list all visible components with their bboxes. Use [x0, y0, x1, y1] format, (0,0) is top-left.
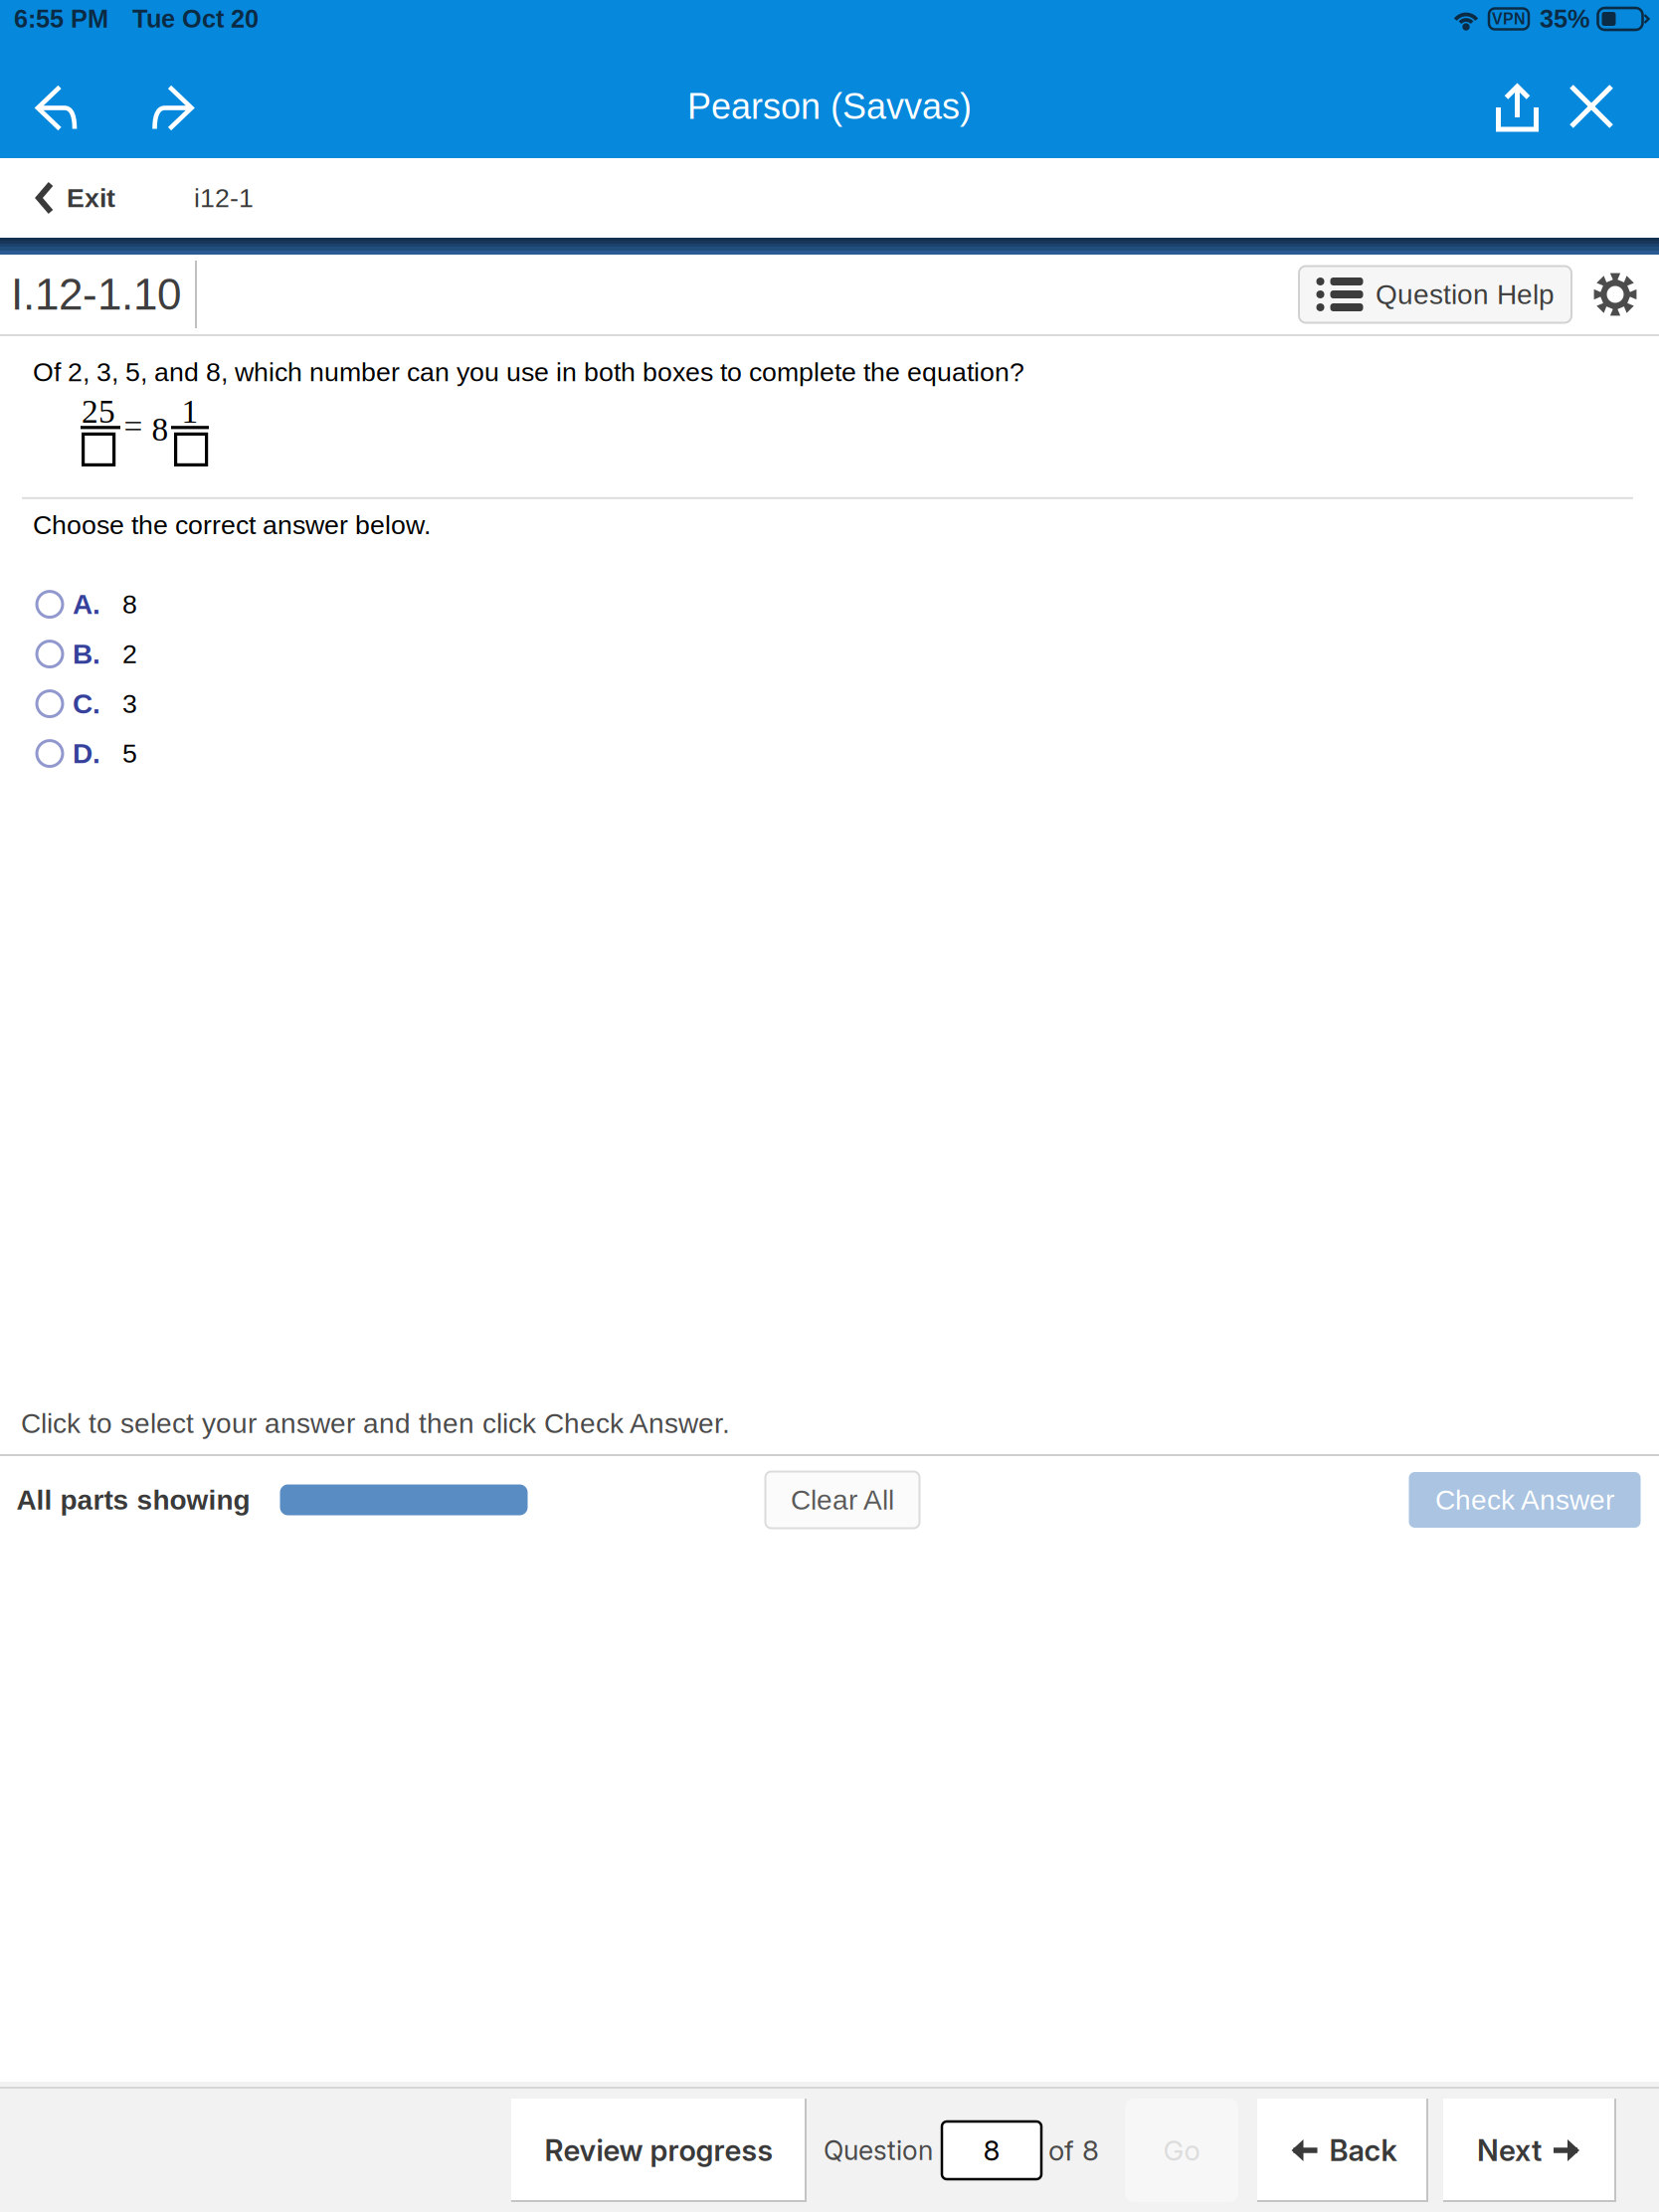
staticText: VPN [1492, 10, 1526, 28]
staticText: Pearson (Savvas) [687, 86, 972, 126]
staticText: 1 [182, 393, 198, 430]
button[interactable]: Clear All [765, 1472, 920, 1528]
staticText: Of 2, 3, 5, and 8, which number can you … [33, 357, 1024, 387]
staticText: 8 [983, 2134, 1000, 2167]
staticText: 3 [122, 689, 137, 719]
staticText: 6:55 PM [14, 5, 108, 33]
staticText: Click to select your answer and then cli… [21, 1408, 730, 1439]
button[interactable]: Review progress [511, 2099, 807, 2202]
staticText: C. [73, 688, 100, 719]
staticText: A. [73, 589, 100, 620]
button[interactable]: Back [0, 55, 112, 158]
button[interactable]: A. [0, 579, 1659, 629]
staticText: Next [1477, 2133, 1542, 2168]
button[interactable]: Close [1548, 55, 1659, 158]
staticText: B. [73, 638, 100, 670]
staticText: Back [1329, 2133, 1397, 2168]
button[interactable]: B. [0, 629, 1659, 679]
staticText: 25 [82, 393, 115, 430]
button[interactable]: D. [0, 729, 1659, 778]
button[interactable]: Check Answer [1409, 1472, 1641, 1528]
button[interactable]: Exit [0, 158, 135, 238]
staticText: Check Answer [1435, 1484, 1614, 1515]
staticText: of 8 [1048, 2134, 1099, 2167]
button[interactable]: Back [1257, 2099, 1428, 2202]
staticText: 5 [122, 739, 137, 768]
staticText: D. [73, 738, 100, 769]
staticText: I.12-1.10 [11, 270, 181, 319]
button[interactable]: Settings [1571, 255, 1659, 334]
staticText: Question [824, 2134, 933, 2166]
staticText: Tue Oct 20 [132, 5, 259, 33]
button[interactable]: Go [1125, 2099, 1238, 2202]
staticText: Go [1163, 2134, 1200, 2167]
button[interactable]: Question Help [1299, 266, 1571, 323]
button[interactable]: Share [1487, 55, 1548, 158]
staticText: 8 [122, 590, 137, 619]
button[interactable]: Forward [112, 55, 236, 158]
staticText: = [124, 408, 143, 445]
staticText: Exit [67, 183, 115, 213]
button[interactable]: C. [0, 679, 1659, 729]
staticText: Review progress [545, 2133, 773, 2168]
staticText: 35% [1540, 5, 1590, 33]
staticText: Choose the correct answer below. [33, 510, 431, 540]
staticText: All parts showing [16, 1484, 250, 1515]
staticText: Question Help [1376, 279, 1555, 310]
staticText: i12-1 [194, 183, 254, 213]
staticText: 8 [152, 411, 169, 448]
staticText: Clear All [791, 1484, 894, 1515]
button[interactable]: Next [1443, 2099, 1616, 2202]
staticText: 2 [122, 639, 137, 669]
